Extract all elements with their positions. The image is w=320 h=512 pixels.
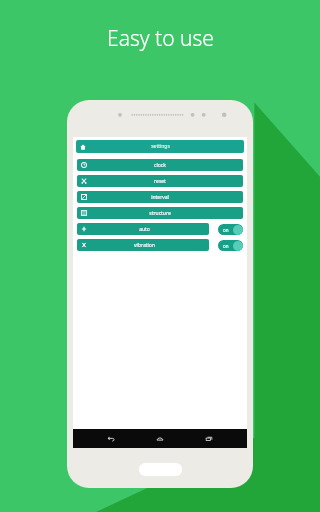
staticText: reset xyxy=(154,178,166,185)
staticText: vibration xyxy=(134,242,155,249)
staticText: Easy to use xyxy=(107,24,214,53)
staticText: settings xyxy=(151,143,170,150)
button[interactable]: vibration toggle, on xyxy=(218,240,243,251)
button[interactable]: auto toggle, on xyxy=(218,224,243,235)
button[interactable]: Home button xyxy=(139,463,182,476)
staticText: structure xyxy=(149,210,171,217)
button[interactable]: vibration xyxy=(77,239,209,251)
staticText: clock xyxy=(154,162,166,169)
staticText: on xyxy=(223,243,229,249)
staticText: interval xyxy=(151,194,169,201)
button[interactable]: auto xyxy=(77,223,209,235)
button[interactable]: settings xyxy=(76,140,244,153)
button[interactable]: interval xyxy=(77,191,243,203)
staticText: on xyxy=(223,227,229,233)
staticText: auto xyxy=(139,226,150,233)
button[interactable]: clock xyxy=(77,159,243,171)
button[interactable]: Back xyxy=(104,432,118,446)
button[interactable]: Home xyxy=(153,432,167,446)
button[interactable]: reset xyxy=(77,175,243,187)
button[interactable]: Recents xyxy=(202,432,216,446)
button[interactable]: structure xyxy=(77,207,243,219)
